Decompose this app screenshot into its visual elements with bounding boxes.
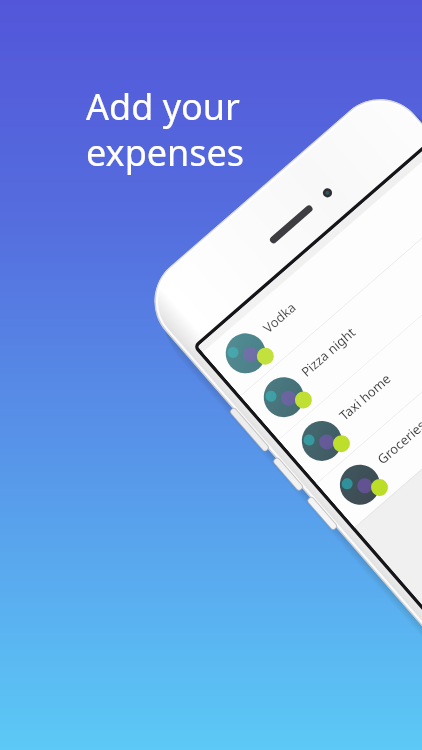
button[interactable]: Debts <box>256 664 346 734</box>
button[interactable]: Home button <box>140 662 218 740</box>
button[interactable]: Transactions <box>88 552 198 632</box>
